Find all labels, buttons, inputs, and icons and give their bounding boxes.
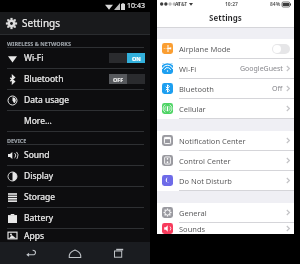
button[interactable]: Airplane Mode (157, 39, 294, 58)
button[interactable]: Notification Center (157, 131, 294, 150)
button[interactable]: Home (62, 243, 88, 263)
staticText: Cellular (179, 104, 206, 114)
staticText: More... (24, 115, 52, 127)
staticText: Notification Center (179, 136, 246, 146)
button[interactable]: Do Not Disturb (157, 171, 294, 190)
staticText: Display (24, 170, 53, 182)
staticText: DEVICE (7, 137, 27, 144)
button[interactable]: Storage (0, 187, 150, 207)
button[interactable]: Cellular (157, 99, 294, 118)
staticText: Bluetooth (179, 84, 214, 94)
button[interactable]: More... (0, 111, 150, 131)
staticText: Off (272, 84, 283, 94)
button[interactable]: Control Center (157, 151, 294, 170)
staticText: Apps (24, 230, 44, 242)
button[interactable] (272, 44, 290, 54)
staticText: OFF (113, 76, 124, 83)
staticText: ON (132, 55, 141, 62)
staticText: Storage (24, 191, 56, 203)
staticText: Data usage (24, 94, 70, 106)
button[interactable]: Sound (0, 145, 150, 165)
staticText: Battery (24, 212, 54, 224)
staticText: 10:27 (225, 1, 238, 8)
staticText: AT&T (175, 1, 188, 8)
staticText: 84% (270, 1, 281, 8)
button[interactable]: Wi-Fi (157, 59, 294, 78)
button[interactable]: Sounds (157, 223, 294, 234)
button[interactable]: Settings (0, 12, 150, 34)
button[interactable]: Back (18, 243, 44, 263)
button[interactable]: Bluetooth (0, 69, 150, 89)
staticText: Control Center (179, 156, 231, 166)
button[interactable]: ON (109, 53, 145, 63)
staticText: Wi-Fi (24, 52, 44, 64)
button[interactable]: Bluetooth (157, 79, 294, 98)
button[interactable]: Wi-Fi (0, 48, 150, 68)
staticText: Settings (22, 16, 61, 30)
staticText: Bluetooth (24, 73, 64, 85)
staticText: 10:43 (127, 1, 145, 11)
button[interactable]: Data usage (0, 90, 150, 110)
button[interactable]: OFF (109, 74, 145, 84)
staticText: Airplane Mode (179, 44, 231, 54)
staticText: Sound (24, 149, 50, 161)
button[interactable]: Display (0, 166, 150, 186)
staticText: General (179, 208, 207, 218)
staticText: Do Not Disturb (179, 176, 232, 186)
staticText: WIRELESS & NETWORKS (7, 40, 71, 47)
staticText: Settings (209, 12, 242, 23)
staticText: Wi-Fi (179, 64, 197, 74)
button[interactable]: Recent apps (106, 243, 132, 263)
staticText: Sounds (179, 224, 206, 234)
button[interactable]: Apps (0, 229, 150, 242)
button[interactable]: Battery (0, 208, 150, 228)
staticText: GoogleGuest (240, 64, 283, 74)
button[interactable]: General (157, 203, 294, 222)
